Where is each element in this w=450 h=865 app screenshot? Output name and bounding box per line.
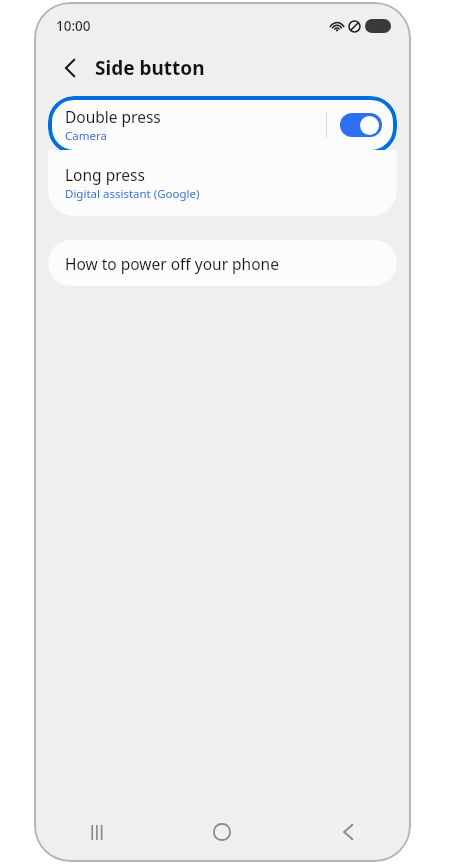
button[interactable]: Back	[56, 53, 86, 83]
button[interactable]: Recent apps	[34, 810, 159, 854]
staticText: Long press	[65, 164, 145, 185]
staticText: Camera	[65, 128, 107, 144]
staticText: 10:00	[56, 17, 91, 35]
staticText: How to power off your phone	[65, 253, 279, 274]
button[interactable]: Back	[285, 810, 411, 854]
staticText: Double press	[65, 106, 161, 127]
button[interactable]: Double press, on	[340, 113, 382, 137]
button[interactable]: Home	[159, 810, 285, 854]
button[interactable]: Long press	[48, 150, 397, 216]
staticText: Side button	[95, 55, 205, 81]
staticText: Digital assistant (Google)	[65, 186, 200, 202]
button[interactable]: How to power off your phone	[48, 240, 397, 286]
button[interactable]: Double press	[48, 96, 397, 154]
